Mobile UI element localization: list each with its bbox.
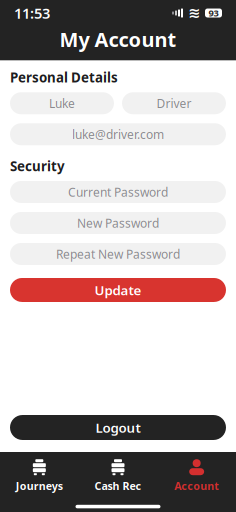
button[interactable]: Logout <box>10 415 226 440</box>
button[interactable]: Account <box>157 455 236 497</box>
staticText: Cash Rec <box>94 479 141 493</box>
button[interactable]: Driver <box>122 92 226 114</box>
button[interactable]: Cash Rec <box>79 455 157 497</box>
button[interactable]: luke@driver.com <box>10 123 226 145</box>
staticText: Current Password <box>68 184 168 200</box>
staticText: Repeat New Password <box>56 246 180 262</box>
staticText: Update <box>94 281 141 299</box>
staticText: Driver <box>156 95 191 111</box>
staticText: 93 <box>208 7 218 19</box>
button[interactable]: Current Password <box>10 181 226 203</box>
staticText: My Account <box>59 26 176 53</box>
staticText: Luke <box>49 95 75 111</box>
staticText: Journeys <box>16 479 63 493</box>
staticText: Account <box>174 479 219 493</box>
staticText: luke@driver.com <box>72 126 164 142</box>
staticText: New Password <box>77 215 159 231</box>
button[interactable]: Luke <box>10 92 114 114</box>
button[interactable]: Update <box>10 278 226 302</box>
staticText: Personal Details <box>10 69 118 86</box>
staticText: Security <box>10 157 65 175</box>
staticText: 11:53 <box>14 3 50 23</box>
button[interactable]: New Password <box>10 212 226 234</box>
button[interactable]: Journeys <box>0 455 79 497</box>
staticText: ≋ <box>188 5 200 21</box>
staticText: Logout <box>95 419 140 436</box>
button[interactable]: Repeat New Password <box>10 243 226 265</box>
